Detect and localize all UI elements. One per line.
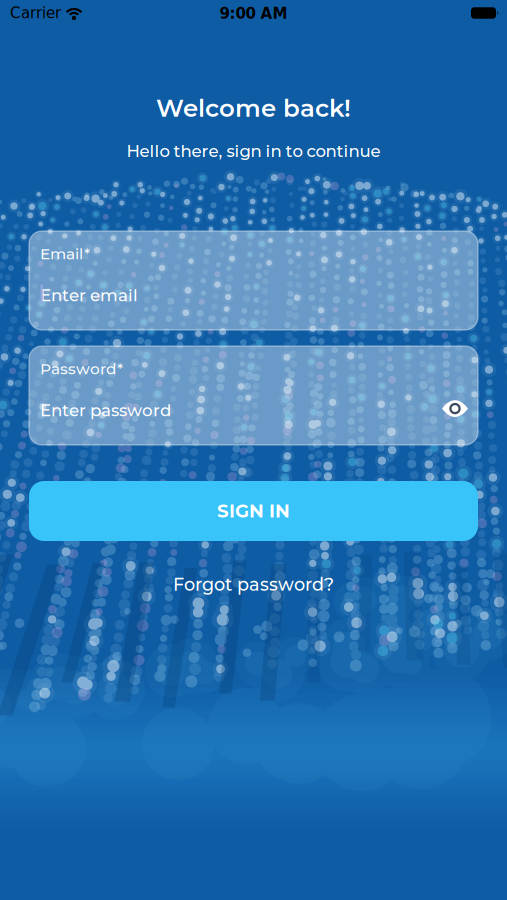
staticText: Welcome back! <box>156 93 351 123</box>
staticText: 9:00 AM <box>219 5 287 22</box>
button[interactable]: Email* <box>29 231 478 330</box>
staticText: Enter email <box>40 285 138 305</box>
button[interactable]: Show password <box>442 400 468 417</box>
button[interactable]: Password* <box>29 346 478 445</box>
staticText: Forgot password? <box>173 574 334 595</box>
button[interactable]: Forgot password? <box>173 574 334 595</box>
staticText: Enter password <box>40 400 171 420</box>
button[interactable]: SIGN IN <box>29 481 478 541</box>
staticText: Password* <box>40 359 123 378</box>
staticText: Carrier <box>10 4 61 22</box>
staticText: SIGN IN <box>217 500 290 522</box>
staticText: Hello there, sign in to continue <box>126 141 380 161</box>
staticText: Email* <box>40 244 90 263</box>
